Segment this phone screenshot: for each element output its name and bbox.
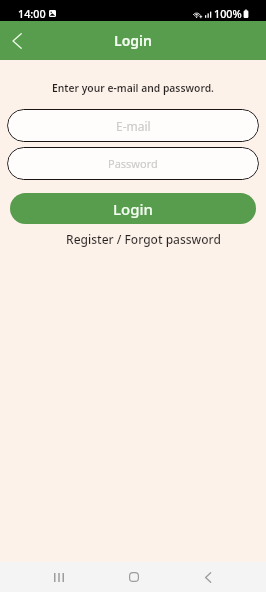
button[interactable]: E-mail	[7, 109, 259, 142]
staticText: Login	[113, 199, 153, 219]
button[interactable]: Back	[185, 562, 230, 592]
staticText: Password	[108, 156, 158, 171]
button[interactable]: Back	[0, 24, 34, 58]
staticText: Login	[114, 31, 152, 50]
staticText: Enter your e-mail and password.	[0, 81, 266, 95]
button[interactable]: Login	[10, 193, 256, 224]
staticText: 14:00	[18, 6, 46, 21]
staticText: E-mail	[116, 118, 151, 134]
button[interactable]: Home	[111, 562, 156, 592]
button[interactable]: Recent apps	[36, 562, 81, 592]
button[interactable]: Register / Forgot password	[21, 231, 266, 247]
staticText: 100%	[214, 6, 242, 21]
button[interactable]: Password	[7, 147, 259, 180]
